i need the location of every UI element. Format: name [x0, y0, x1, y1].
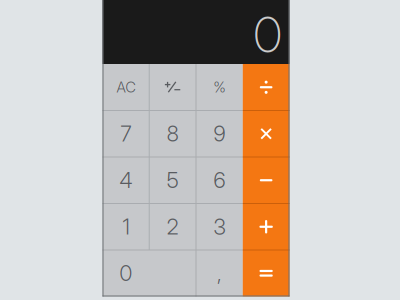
button[interactable]: 3 [196, 203, 243, 250]
button[interactable]: Multiply [243, 110, 290, 157]
button[interactable]: Add [243, 203, 290, 250]
staticText: 7 [120, 121, 131, 147]
button[interactable]: , [196, 250, 243, 296]
staticText: 4 [119, 167, 132, 193]
button[interactable]: 7 [102, 110, 149, 157]
button[interactable]: 4 [102, 157, 149, 203]
staticText: 3 [213, 214, 225, 240]
button[interactable]: 2 [149, 203, 196, 250]
button[interactable]: Divide [243, 64, 290, 110]
staticText: 0 [253, 5, 281, 64]
button[interactable]: 1 [102, 203, 149, 250]
button[interactable]: Equals [243, 250, 290, 296]
button[interactable]: 0 [102, 250, 196, 296]
button[interactable]: % [196, 64, 243, 110]
staticText: AC [116, 78, 135, 96]
button[interactable]: 6 [196, 157, 243, 203]
button[interactable]: 5 [149, 157, 196, 203]
staticText: 8 [167, 121, 179, 147]
button[interactable]: 9 [196, 110, 243, 157]
button[interactable]: 8 [149, 110, 196, 157]
button[interactable]: AC [102, 64, 149, 110]
staticText: % [213, 78, 225, 96]
button[interactable]: Toggle sign [149, 64, 196, 110]
staticText: 6 [213, 167, 225, 193]
staticText: 9 [213, 121, 225, 147]
button[interactable]: Subtract [243, 157, 290, 203]
staticText: , [217, 260, 222, 286]
staticText: 5 [167, 167, 179, 193]
staticText: 0 [119, 260, 132, 286]
staticText: 2 [167, 214, 179, 240]
staticText: 1 [122, 214, 129, 240]
